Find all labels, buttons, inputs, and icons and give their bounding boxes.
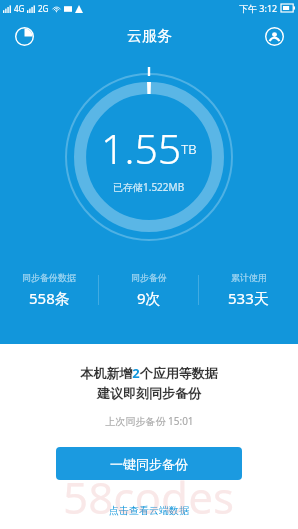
button[interactable]: 一键同步备份 xyxy=(56,447,242,480)
button[interactable]: Statistics xyxy=(8,20,40,52)
button[interactable]: 同步备份数据 xyxy=(0,272,98,308)
button[interactable]: Account xyxy=(258,20,290,52)
staticText: 4G xyxy=(14,3,25,14)
staticText: 同步备份 xyxy=(131,272,167,283)
button[interactable]: 点击查看云端数据 xyxy=(99,500,199,521)
staticText: 累计使用 xyxy=(231,272,267,283)
staticText: 58codes xyxy=(63,467,235,527)
staticText: 下午 3:12 xyxy=(239,2,278,14)
staticText: 533天 xyxy=(228,288,269,308)
staticText: 2G xyxy=(38,3,49,14)
staticText: 9次 xyxy=(137,288,161,308)
staticText: 558条 xyxy=(29,288,70,308)
staticText: 建议即刻同步备份 xyxy=(97,385,201,401)
staticText: 点击查看云端数据 xyxy=(109,504,189,517)
staticText: 1.55TB xyxy=(101,120,197,176)
staticText: 上次同步备份 15:01 xyxy=(105,414,194,428)
button[interactable]: 累计使用 xyxy=(199,272,298,308)
staticText: 本机新增2个应用等数据 xyxy=(80,364,218,382)
button[interactable]: 同步备份 xyxy=(99,272,198,308)
staticText: 同步备份数据 xyxy=(22,272,76,283)
staticText: 已存储1.522MB xyxy=(113,180,185,194)
staticText: 云服务 xyxy=(127,27,172,46)
staticText: 一键同步备份 xyxy=(110,456,188,472)
